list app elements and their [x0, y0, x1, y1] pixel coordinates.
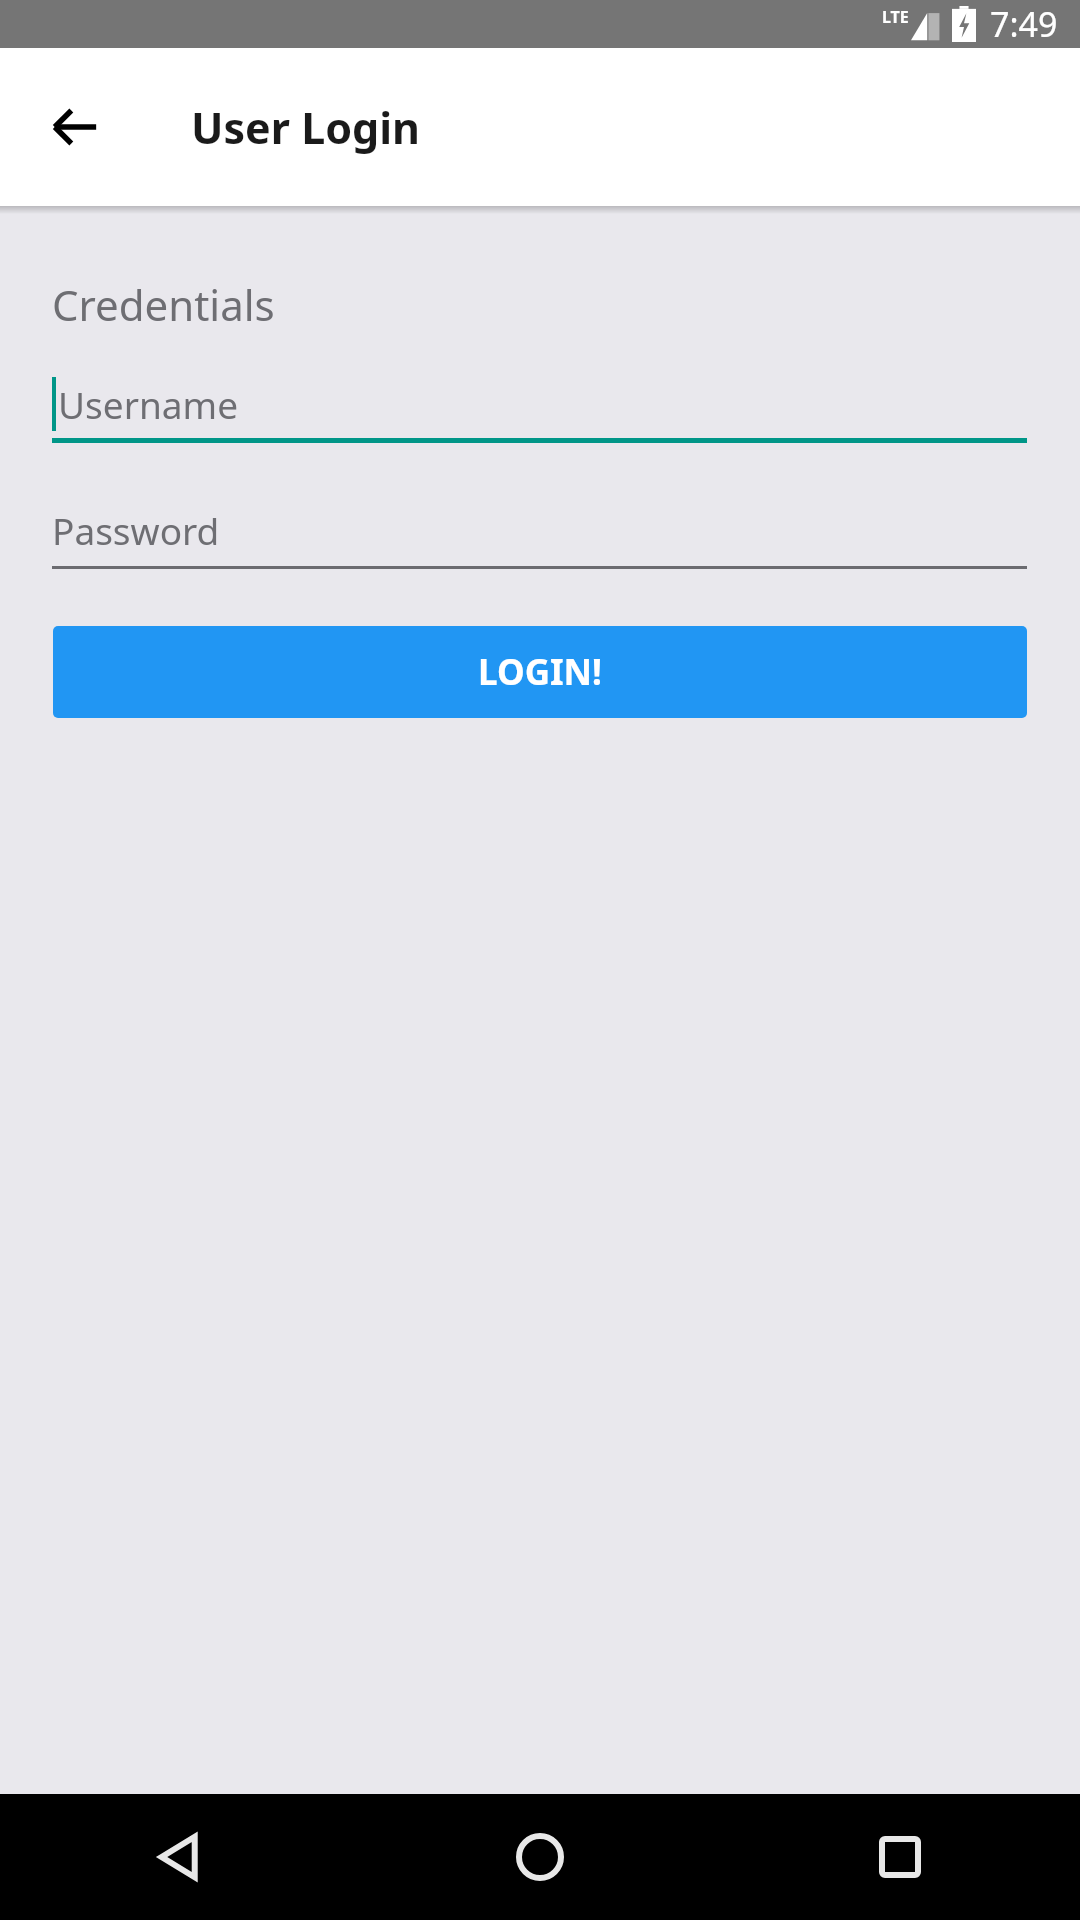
staticText: Password [52, 505, 220, 555]
staticText: User Login [191, 98, 421, 157]
button[interactable]: Username [52, 365, 1027, 443]
button[interactable]: Home [360, 1794, 720, 1920]
staticText: Credentials [52, 276, 275, 333]
button[interactable]: Recent apps [720, 1794, 1080, 1920]
button[interactable]: Back [27, 79, 123, 175]
staticText: LTE [882, 6, 909, 28]
button[interactable]: Password [52, 491, 1027, 569]
staticText: 7:49 [990, 1, 1058, 47]
staticText: Username [58, 379, 239, 429]
staticText: LOGIN! [478, 648, 602, 696]
button[interactable]: LOGIN! [53, 626, 1027, 718]
button[interactable]: Back [0, 1794, 360, 1920]
